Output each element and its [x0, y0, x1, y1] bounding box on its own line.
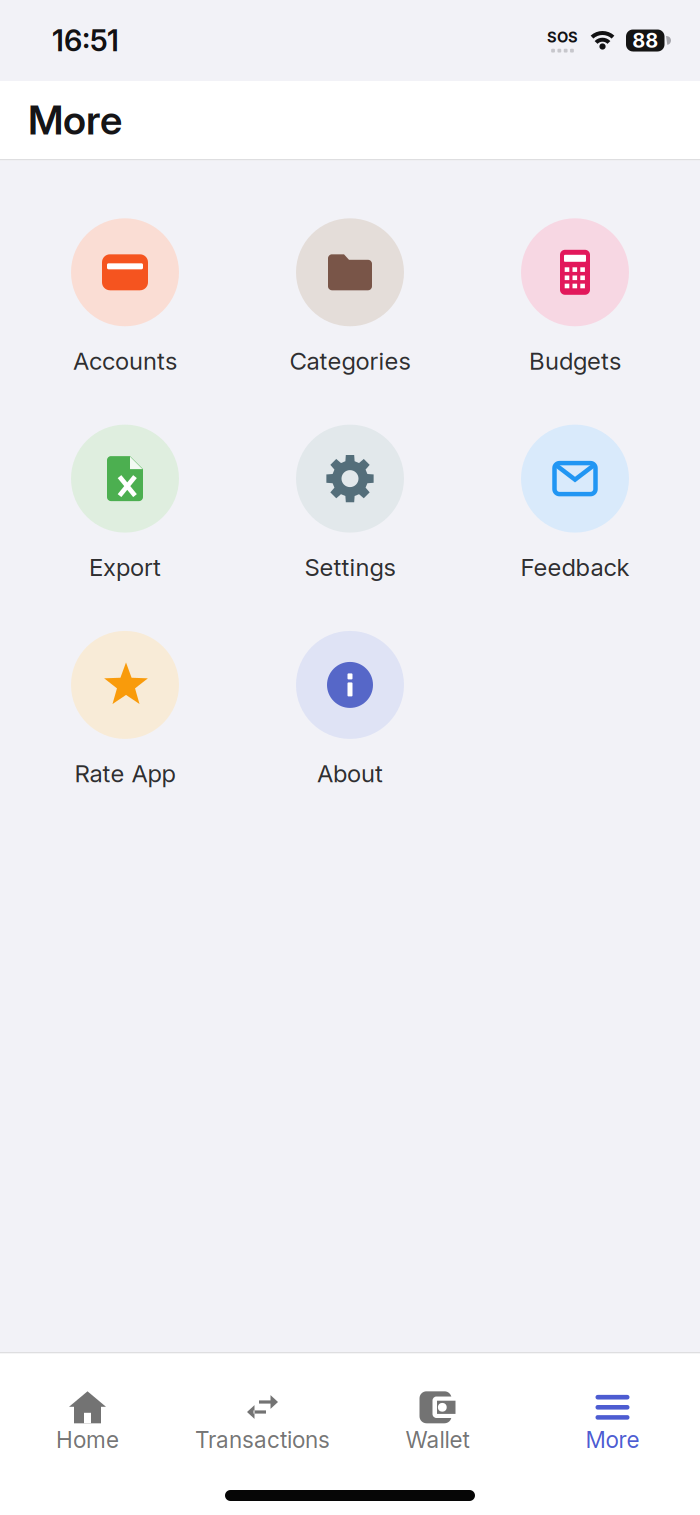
button[interactable]: About [237, 631, 462, 788]
staticText: Home [56, 1426, 119, 1453]
staticText: 16:51 [52, 23, 119, 58]
staticText: Budgets [529, 347, 621, 375]
button[interactable]: Settings [237, 425, 462, 581]
staticText: About [317, 759, 383, 788]
button[interactable]: More [525, 1389, 700, 1453]
button[interactable]: Home [0, 1389, 175, 1453]
button[interactable]: Transactions [175, 1389, 350, 1453]
staticText: More [28, 96, 122, 144]
staticText: 88 [632, 29, 658, 52]
staticText: Export [89, 553, 161, 581]
staticText: Wallet [405, 1426, 469, 1453]
button[interactable]: Categories [237, 218, 462, 375]
button[interactable]: Export [12, 425, 237, 581]
button[interactable]: Rate App [12, 631, 237, 788]
staticText: Accounts [73, 347, 177, 375]
button[interactable]: Feedback [462, 425, 687, 581]
staticText: Categories [289, 347, 410, 375]
button[interactable]: Budgets [462, 218, 687, 375]
staticText: Rate App [74, 759, 175, 788]
staticText: More [585, 1426, 639, 1453]
staticText: SOS [547, 28, 578, 46]
staticText: Feedback [520, 553, 629, 581]
button[interactable]: Wallet [350, 1389, 525, 1453]
button[interactable]: Accounts [12, 218, 237, 375]
staticText: Settings [304, 553, 395, 581]
staticText: Transactions [195, 1426, 330, 1453]
